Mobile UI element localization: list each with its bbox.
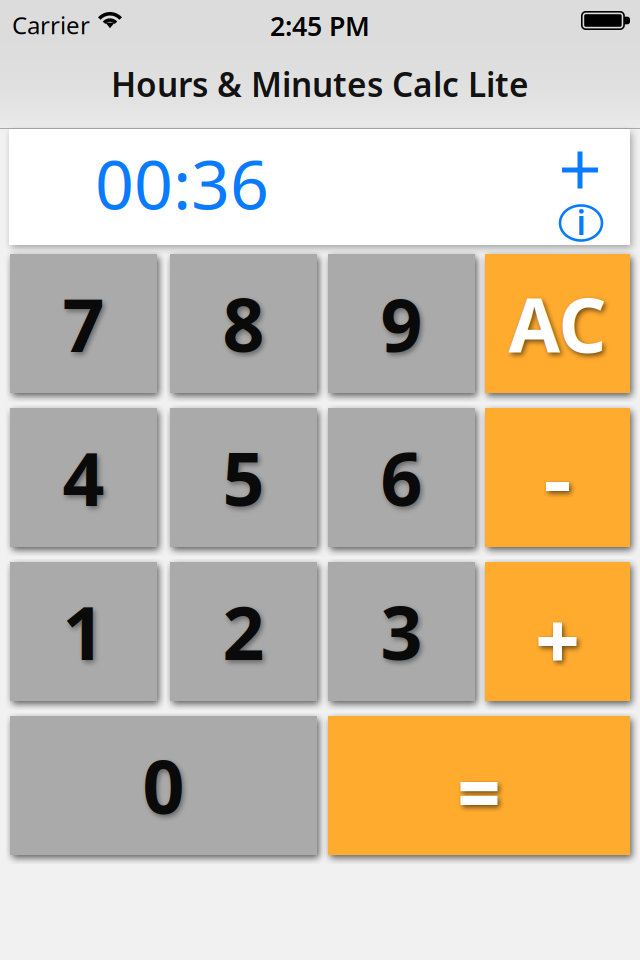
button[interactable]: Add (544, 142, 616, 198)
staticText: i (576, 200, 585, 244)
button[interactable]: 5 (170, 408, 317, 547)
staticText: Carrier (12, 9, 90, 41)
staticText: 5 (222, 429, 264, 526)
staticText: 0 (142, 737, 184, 834)
button[interactable]: 7 (10, 254, 157, 393)
button[interactable]: 1 (10, 562, 157, 701)
staticText: 00:36 (95, 138, 269, 228)
button[interactable]: 9 (328, 254, 475, 393)
staticText: AC (508, 274, 606, 373)
button[interactable]: AC (485, 254, 630, 393)
staticText: 7 (62, 275, 104, 372)
button[interactable]: Info (545, 198, 617, 248)
button[interactable]: 0 (10, 716, 317, 855)
staticText: 2:45 PM (270, 8, 370, 43)
button[interactable]: Plus (485, 562, 630, 701)
button[interactable]: Minus (485, 408, 630, 547)
button[interactable]: 3 (328, 562, 475, 701)
staticText: 6 (380, 429, 422, 526)
staticText: 1 (62, 583, 104, 680)
button[interactable]: 4 (10, 408, 157, 547)
button[interactable]: 2 (170, 562, 317, 701)
staticText: 9 (380, 275, 422, 372)
staticText: 8 (222, 275, 264, 372)
staticText: Hours & Minutes Calc Lite (111, 62, 529, 106)
button[interactable]: Equals (328, 716, 630, 855)
staticText: 2 (222, 583, 264, 680)
button[interactable]: 8 (170, 254, 317, 393)
staticText: 4 (62, 429, 104, 526)
staticText: 3 (380, 583, 422, 680)
button[interactable]: 6 (328, 408, 475, 547)
